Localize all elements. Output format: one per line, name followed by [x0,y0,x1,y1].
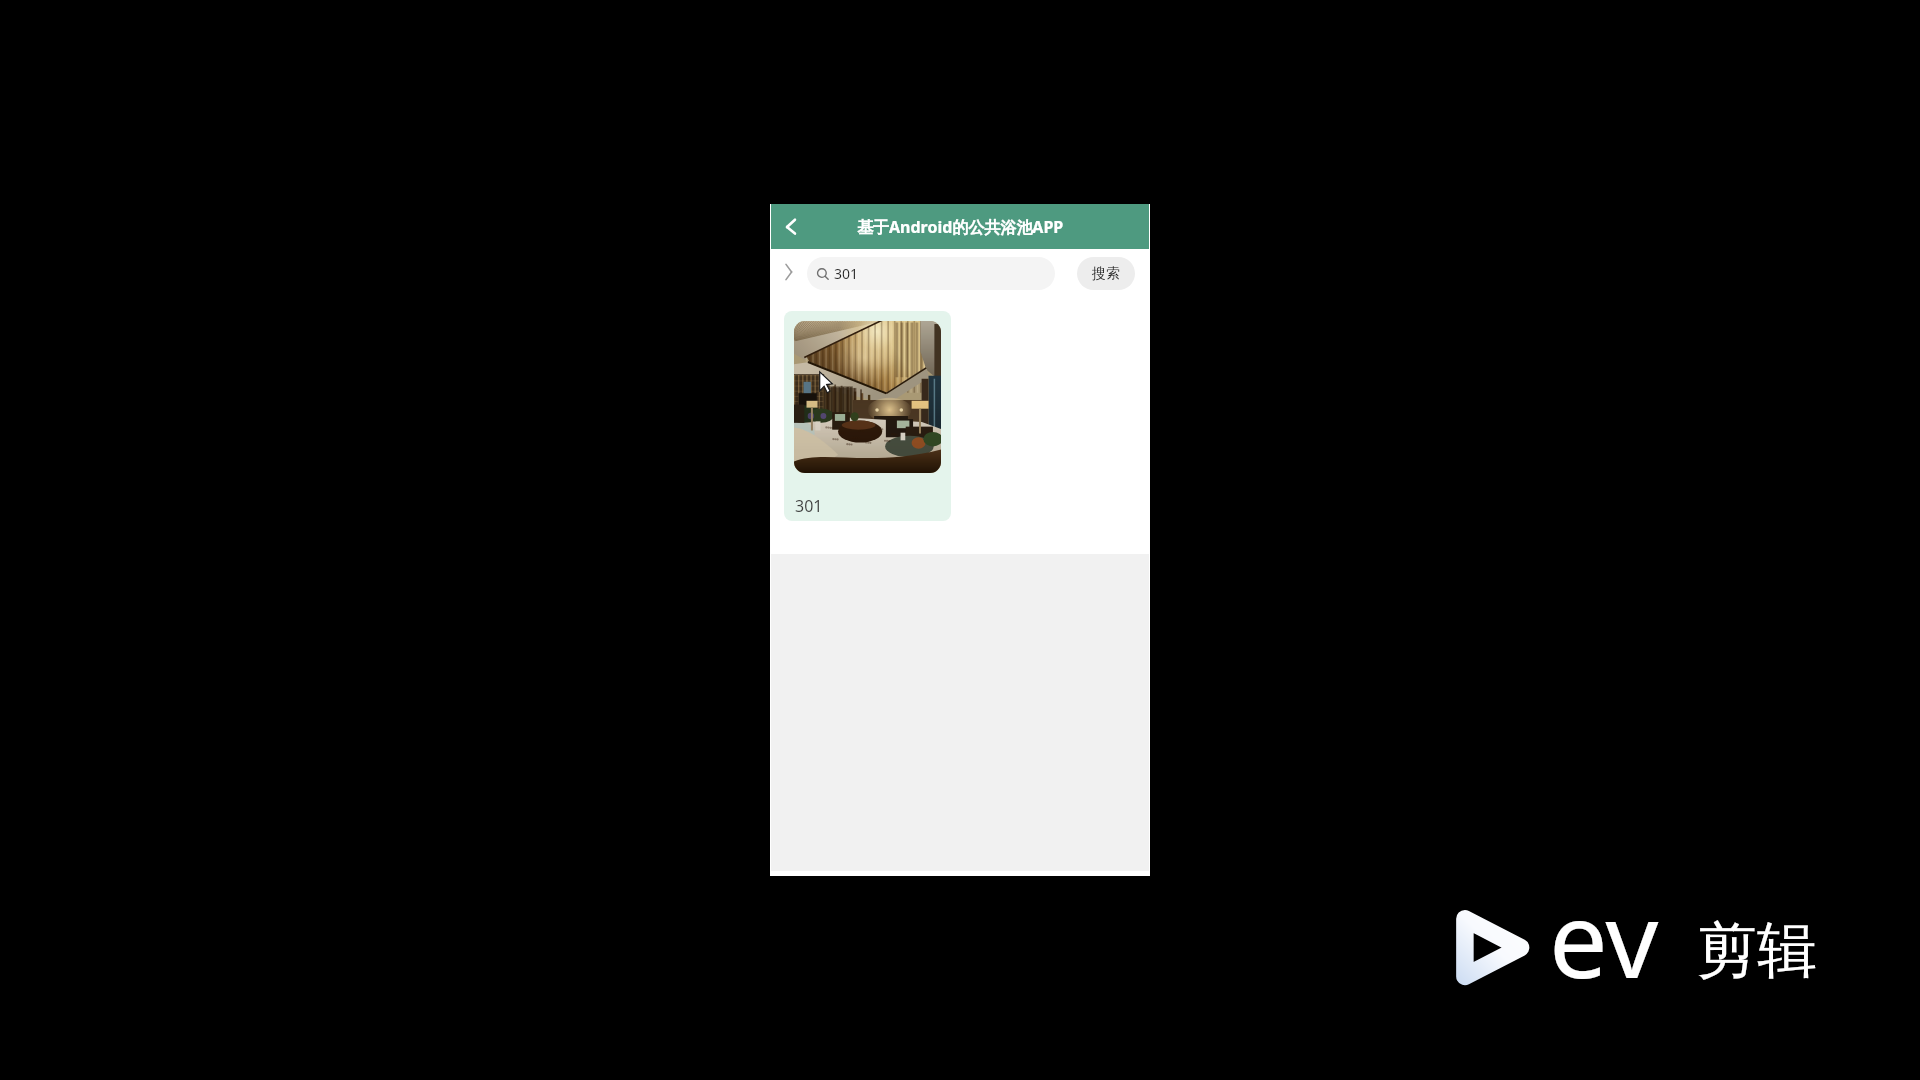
staticText: 基于Android的公共浴池APP [857,216,1064,238]
button[interactable]: 301 [784,311,951,521]
button[interactable]: 搜索 [1077,257,1135,290]
staticText: 剪辑 [1697,913,1817,989]
staticText: ev [1549,867,1659,1009]
staticText: 搜索 [1092,265,1120,283]
button[interactable]: Back [772,208,810,246]
button[interactable]: 301 [807,257,1055,290]
staticText: 301 [795,495,823,517]
staticText: 301 [834,264,859,283]
button[interactable]: Expand [777,252,799,292]
